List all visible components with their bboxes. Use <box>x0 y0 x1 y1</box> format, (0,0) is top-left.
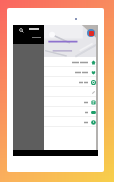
other: Search <box>19 28 24 33</box>
button[interactable]: Menu item <box>44 117 98 127</box>
button[interactable]: Menu item <box>44 107 98 117</box>
button[interactable]: Menu item <box>44 97 98 107</box>
button[interactable]: Menu item <box>44 67 98 77</box>
button[interactable]: Menu item <box>44 57 98 67</box>
button[interactable]: Menu item <box>44 77 98 87</box>
button[interactable]: Menu item <box>44 87 98 97</box>
